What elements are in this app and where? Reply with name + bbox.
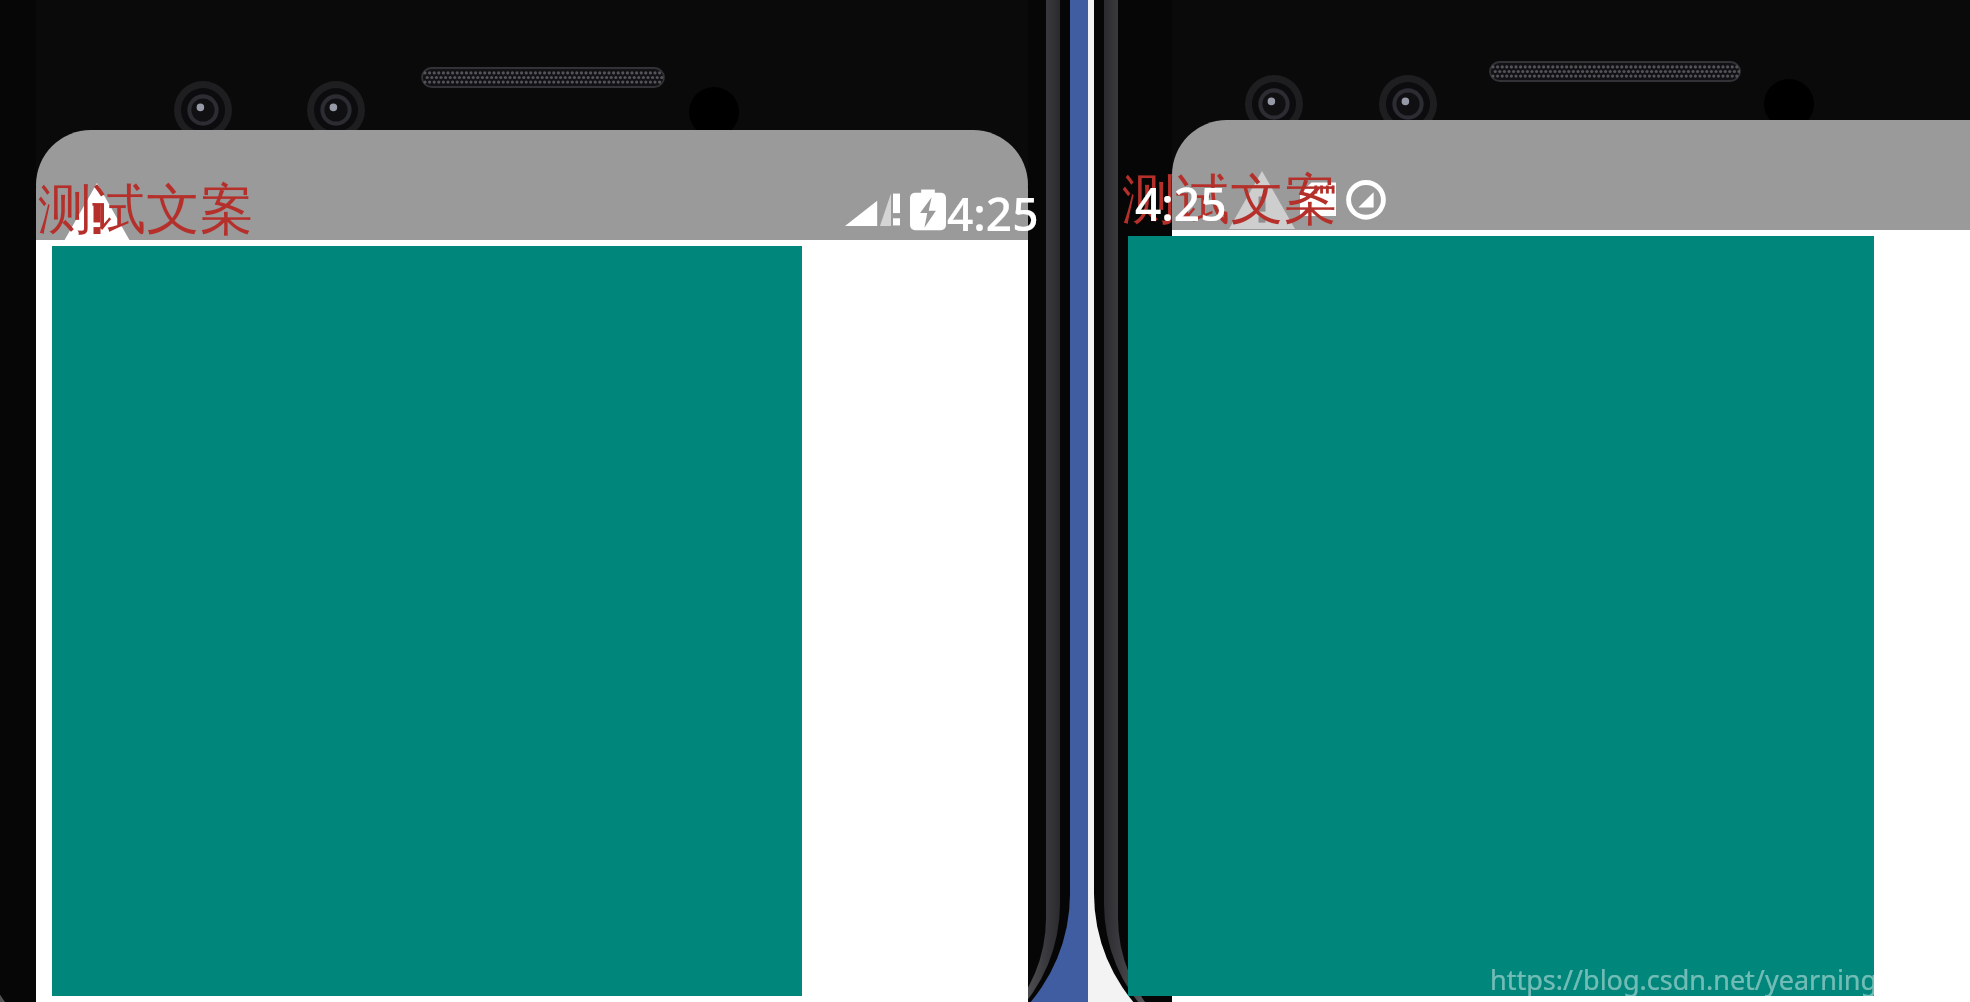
button[interactable]: 4:25	[947, 182, 1039, 245]
button[interactable]: 4:25	[1135, 172, 1227, 235]
button[interactable]: 测试文案	[1122, 166, 1338, 234]
button[interactable]: 测试文案	[38, 176, 254, 244]
staticText: https://blog.csdn.net/yearningseeker	[1490, 961, 1962, 998]
